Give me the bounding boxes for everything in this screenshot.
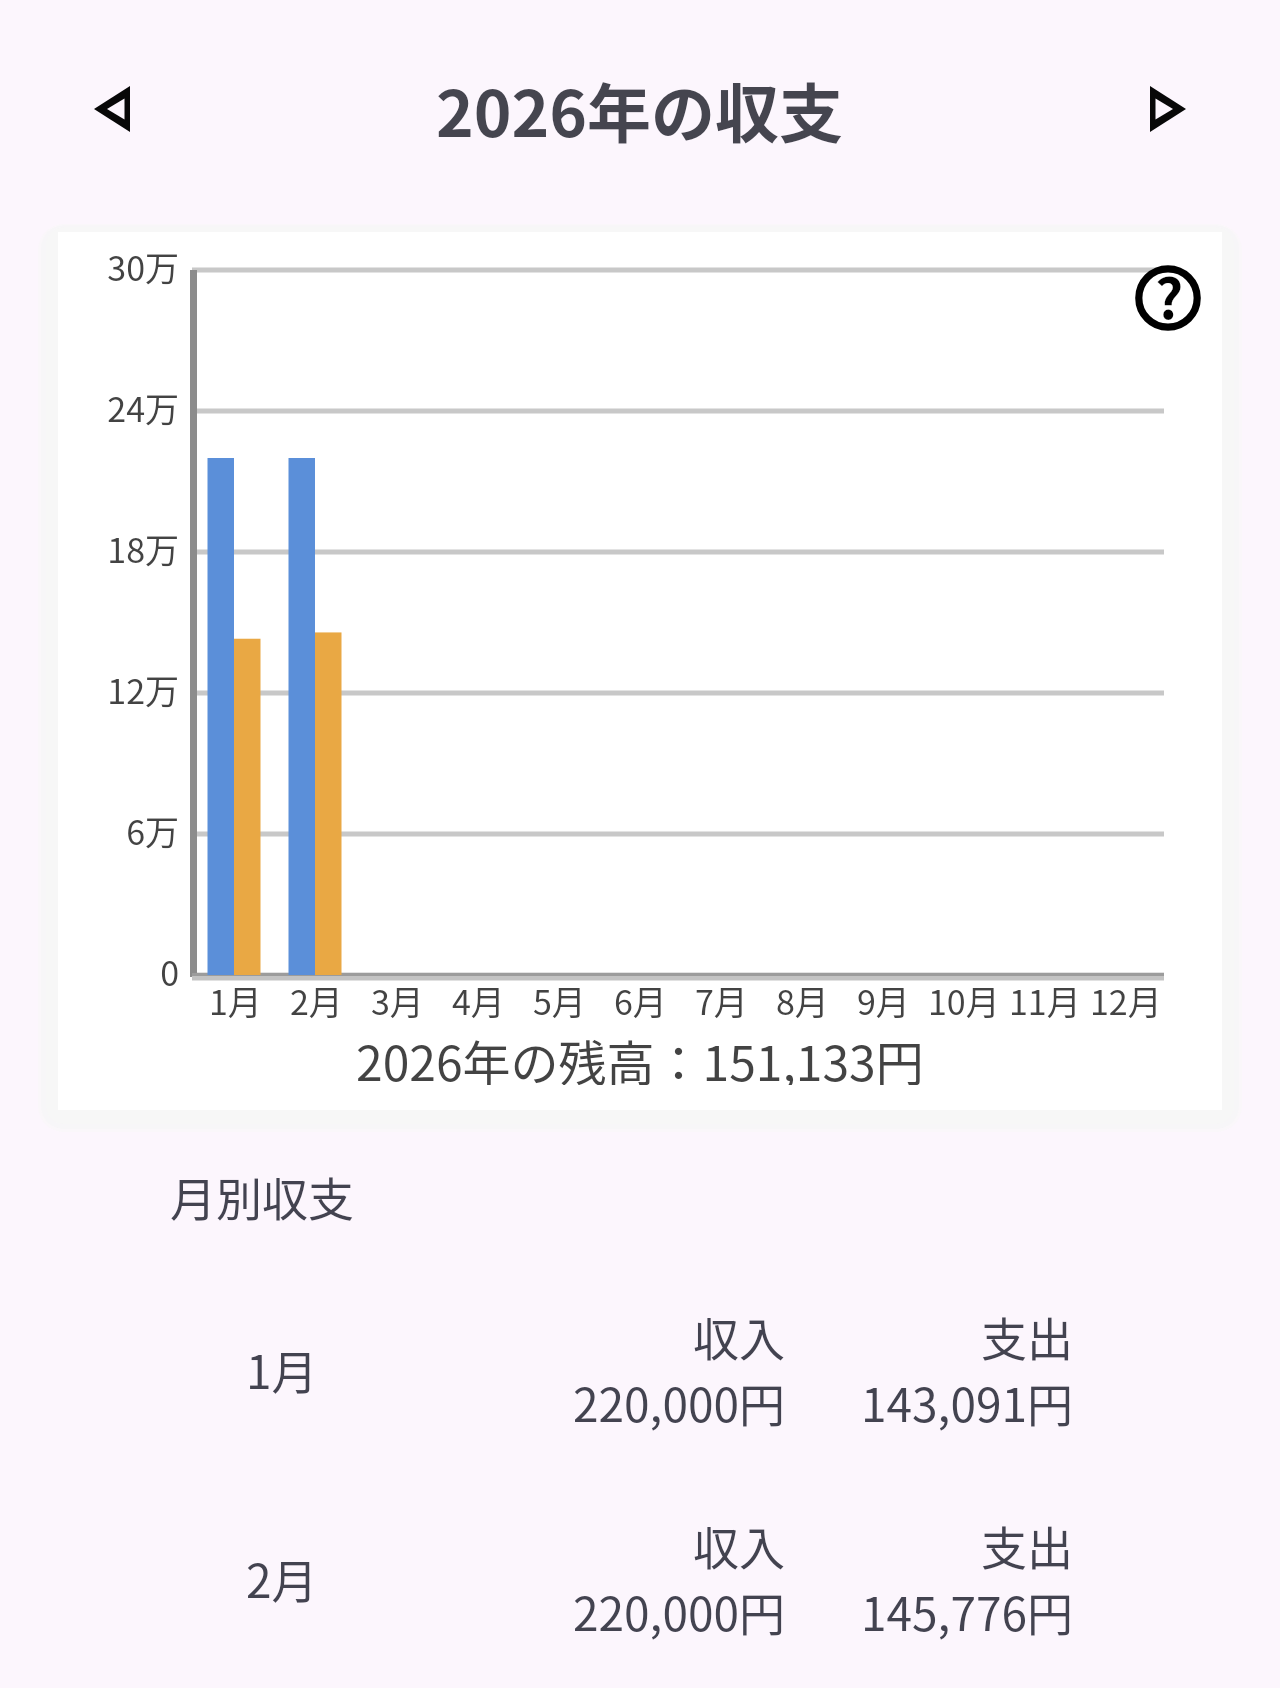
staticText: 3月 — [371, 976, 424, 1025]
staticText: 5月 — [533, 976, 586, 1025]
staticText: 12月 — [1090, 976, 1162, 1025]
staticText: 18万 — [107, 524, 179, 573]
staticText: ? — [1155, 255, 1184, 335]
staticText: 7月 — [695, 976, 748, 1025]
button[interactable]: 1月 — [0, 1272, 1280, 1472]
staticText: 220,000円 — [573, 1369, 785, 1436]
staticText: 1月 — [209, 976, 262, 1025]
staticText: 12万 — [107, 665, 179, 714]
staticText: 145,776円 — [861, 1578, 1073, 1645]
staticText: 月別収支 — [170, 1163, 354, 1230]
staticText: 6月 — [614, 976, 667, 1025]
staticText: 10月 — [928, 976, 1000, 1025]
button[interactable]: Help — [1128, 258, 1208, 338]
staticText: 143,091円 — [861, 1369, 1073, 1436]
staticText: 2026年の収支 — [436, 63, 844, 156]
staticText: 9月 — [857, 976, 910, 1025]
staticText: 2月 — [290, 976, 343, 1025]
staticText: 収入 — [693, 1512, 785, 1579]
staticText: 2月 — [246, 1545, 318, 1612]
staticText: 4月 — [452, 976, 505, 1025]
staticText: 30万 — [107, 242, 179, 291]
staticText: 24万 — [107, 383, 179, 432]
button[interactable]: Previous year — [67, 64, 157, 154]
staticText: 1月 — [246, 1336, 318, 1403]
button[interactable]: 2月 — [0, 1481, 1280, 1681]
staticText: 支出 — [981, 1512, 1073, 1579]
button[interactable]: Next year — [1123, 64, 1213, 154]
staticText: 220,000円 — [573, 1578, 785, 1645]
staticText: 6万 — [126, 806, 179, 855]
staticText: 収入 — [693, 1303, 785, 1370]
staticText: 8月 — [776, 976, 829, 1025]
staticText: 2026年の残高：151,133円 — [356, 1025, 924, 1085]
staticText: 支出 — [981, 1303, 1073, 1370]
staticText: 0 — [160, 947, 179, 996]
staticText: 11月 — [1009, 976, 1081, 1025]
